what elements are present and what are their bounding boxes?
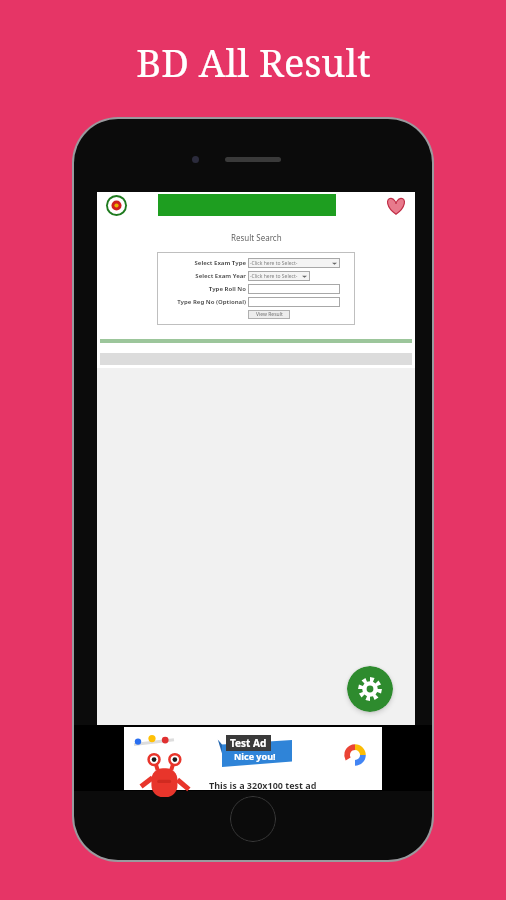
button[interactable]: -Click here to Select- (248, 271, 310, 281)
button[interactable] (248, 284, 340, 294)
staticText: BD All Result (136, 36, 371, 88)
button[interactable] (248, 297, 340, 307)
button[interactable]: -Click here to Select- (248, 258, 340, 268)
staticText: This is a 320x100 test ad (209, 779, 317, 791)
staticText: Result Search (231, 232, 282, 243)
staticText: Type Reg No (Optional) (177, 298, 246, 306)
staticText: -Click here to Select- (250, 260, 298, 267)
staticText: Type Roll No (208, 285, 246, 293)
staticText: Select Exam Type (194, 259, 246, 267)
button[interactable]: Home (230, 796, 276, 842)
button[interactable]: Advertisement (124, 727, 382, 790)
staticText: View Result (256, 311, 283, 318)
staticText: Test Ad (230, 736, 267, 750)
staticText: Nice you! (234, 750, 276, 762)
staticText: -Click here to Select- (250, 273, 298, 280)
button[interactable]: Settings (347, 666, 393, 712)
button[interactable]: View Result (248, 310, 290, 319)
staticText: Select Exam Year (195, 272, 246, 280)
